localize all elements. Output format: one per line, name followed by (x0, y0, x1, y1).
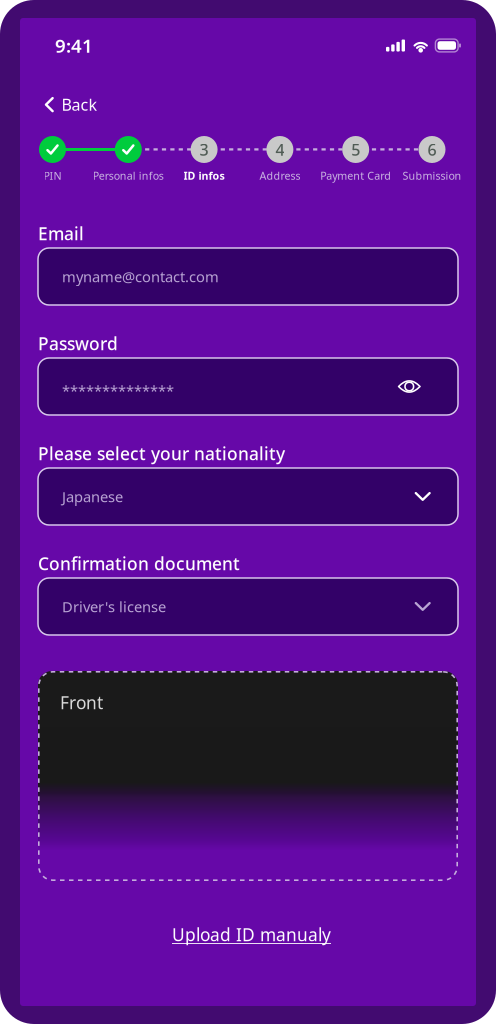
staticText: myname@contact.com (62, 267, 219, 286)
button[interactable]: Back (38, 88, 104, 121)
staticText: Password (38, 332, 118, 355)
button[interactable]: Show password (398, 379, 421, 394)
button[interactable]: Upload ID manualy (160, 915, 343, 954)
staticText: Driver's license (62, 597, 166, 616)
staticText: Address (259, 168, 300, 183)
staticText: Personal infos (93, 168, 164, 183)
staticText: PIN (43, 168, 61, 183)
staticText: ************** (62, 381, 174, 400)
staticText: Upload ID manualy (172, 923, 331, 946)
staticText: Back (62, 94, 98, 115)
button[interactable]: Capture front of document (38, 671, 458, 881)
staticText: 5 (351, 139, 360, 160)
staticText: 4 (275, 139, 284, 160)
staticText: Confirmation document (38, 552, 240, 575)
staticText: Front (60, 691, 103, 714)
staticText: ID infos (184, 168, 225, 183)
staticText: Payment Card (320, 168, 391, 183)
staticText: 3 (200, 139, 209, 160)
staticText: 6 (427, 139, 436, 160)
staticText: Email (38, 222, 84, 245)
button[interactable]: Japanese (38, 468, 458, 525)
staticText: Japanese (62, 487, 123, 506)
staticText: 9:41 (55, 33, 93, 58)
staticText: Please select your nationality (38, 442, 285, 465)
staticText: Submission (402, 168, 461, 183)
button[interactable]: Driver's license (38, 578, 458, 635)
